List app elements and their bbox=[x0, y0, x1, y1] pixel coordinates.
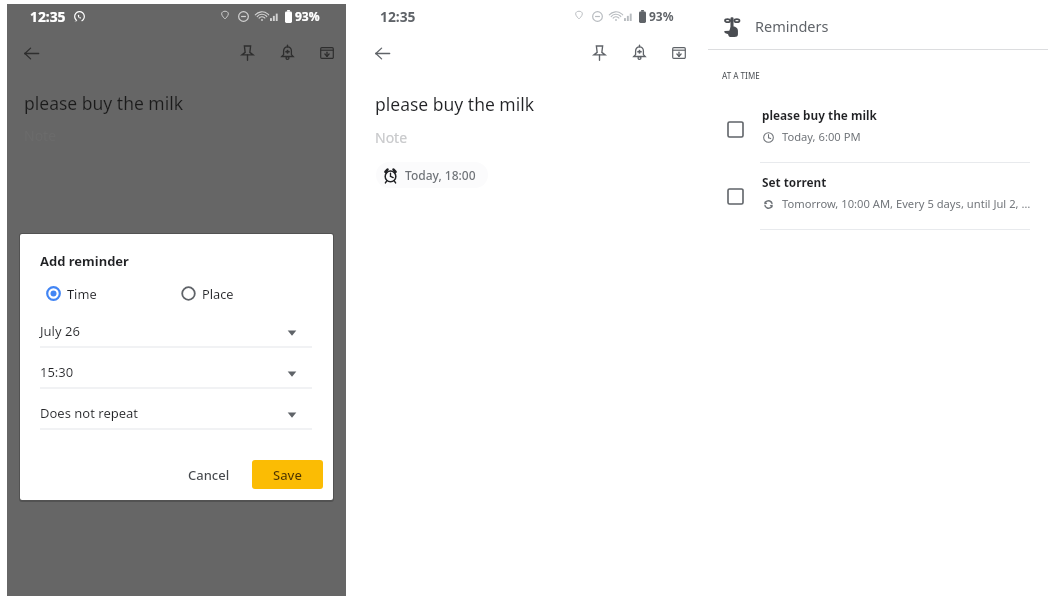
button[interactable]: Archive bbox=[313, 39, 341, 67]
staticText: AT A TIME bbox=[722, 70, 760, 81]
staticText: 93% bbox=[649, 8, 674, 24]
button[interactable]: Set torrent bbox=[708, 174, 1048, 229]
button[interactable]: Add reminder bbox=[625, 39, 653, 67]
button[interactable]: Cancel bbox=[177, 460, 241, 489]
button[interactable]: Save bbox=[252, 460, 323, 489]
staticText: 12:35 bbox=[30, 7, 66, 26]
staticText: Note bbox=[375, 128, 408, 147]
button[interactable]: July 26 bbox=[40, 320, 312, 347]
staticText: 12:35 bbox=[380, 7, 416, 26]
staticText: Tomorrow, 10:00 AM, Every 5 days, until … bbox=[782, 196, 1031, 211]
staticText: please buy the milk bbox=[24, 91, 184, 115]
staticText: Today, 18:00 bbox=[405, 167, 476, 183]
staticText: please buy the milk bbox=[762, 107, 877, 123]
staticText: Time bbox=[67, 285, 97, 302]
staticText: Place bbox=[202, 285, 234, 302]
staticText: July 26 bbox=[40, 322, 80, 340]
button[interactable]: Place bbox=[181, 281, 234, 305]
button[interactable]: Back bbox=[16, 38, 46, 68]
staticText: Reminders bbox=[755, 16, 829, 36]
button[interactable]: Pin note bbox=[233, 39, 261, 67]
staticText: Save bbox=[273, 466, 302, 484]
button[interactable]: Pin note bbox=[585, 39, 613, 67]
button[interactable]: 15:30 bbox=[40, 361, 312, 388]
staticText: Today, 6:00 PM bbox=[782, 129, 861, 144]
staticText: 93% bbox=[295, 8, 320, 24]
staticText: Set torrent bbox=[762, 174, 827, 190]
button[interactable]: Reminders bbox=[708, 5, 1008, 47]
button[interactable]: Does not repeat bbox=[40, 402, 312, 429]
button[interactable]: Add reminder bbox=[273, 39, 301, 67]
staticText: Cancel bbox=[188, 466, 230, 484]
button[interactable]: please buy the milk bbox=[708, 107, 1048, 162]
button[interactable]: Time bbox=[46, 281, 97, 305]
staticText: Does not repeat bbox=[40, 404, 139, 422]
button[interactable]: Back bbox=[367, 38, 397, 68]
button[interactable]: Today, 18:00 bbox=[376, 162, 488, 188]
staticText: Add reminder bbox=[40, 252, 129, 270]
staticText: please buy the milk bbox=[375, 92, 535, 116]
button[interactable]: Archive bbox=[665, 39, 693, 67]
staticText: 15:30 bbox=[40, 363, 74, 381]
